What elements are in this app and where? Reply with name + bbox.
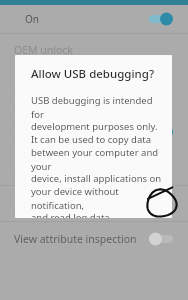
button[interactable]: Running services [0,70,188,101]
staticText: View attribute inspection [14,232,137,246]
staticText: OEM unlock [14,43,73,57]
staticText: Debugging [14,103,62,115]
staticText: Information about your device to include… [14,163,174,182]
staticText: Allow the bootloader to be unlocked [14,57,142,67]
staticText: between your computer and your [31,146,162,172]
staticText: Mock location app [14,194,105,208]
staticText: device, install applications on [31,172,162,185]
staticText: Revoke USB debugging authorizations [14,149,174,163]
button[interactable]: On [0,5,188,33]
staticText: development purposes only. [31,120,158,133]
staticText: your device without notification, [31,185,162,211]
button[interactable]: USB debugging [0,118,188,147]
staticText: and read log data. [31,211,113,218]
staticText: Debug mode when USB is connected [14,134,144,144]
button[interactable]: Revoke USB debugging authorizations [0,147,188,185]
staticText: On [25,12,39,26]
staticText: None [14,208,34,218]
staticText: It can be used to copy data [31,133,151,146]
button[interactable]: Mock location app [0,186,188,221]
button[interactable]: Debugging [0,101,188,118]
button[interactable]: Toggle on [148,125,174,139]
button[interactable]: OEM unlock [0,34,188,70]
staticText: Running services [14,74,98,88]
button[interactable]: Toggle on [148,12,174,26]
button[interactable]: View attribute inspection [0,222,188,256]
staticText: Allow USB debugging? [31,66,155,82]
staticText: View and control currently running servi… [14,88,167,98]
staticText: USB debugging [14,120,91,134]
staticText: USB debugging is intended for [31,94,162,120]
button[interactable]: Toggle off [148,232,174,246]
